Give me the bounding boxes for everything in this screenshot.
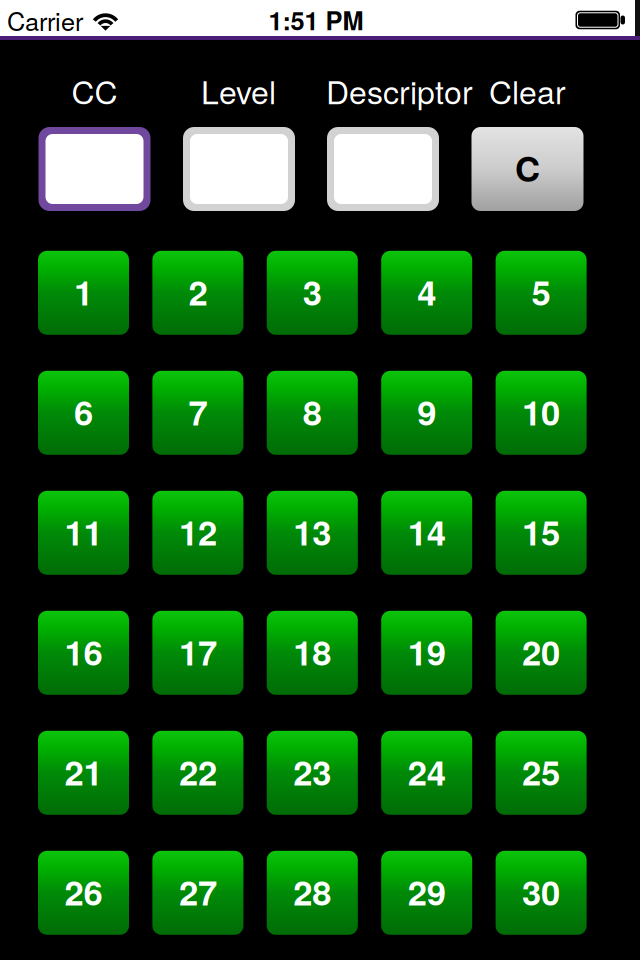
- button[interactable]: 2: [152, 251, 243, 335]
- staticText: 4: [417, 266, 436, 316]
- button[interactable]: 25: [496, 731, 587, 815]
- staticText: 13: [293, 506, 331, 556]
- staticText: 25: [522, 746, 560, 796]
- button[interactable]: 16: [38, 611, 129, 695]
- button[interactable]: 7: [152, 371, 243, 455]
- button[interactable]: 10: [496, 371, 587, 455]
- button[interactable]: CC: [38, 127, 150, 211]
- button[interactable]: 17: [152, 611, 243, 695]
- staticText: 12: [179, 506, 217, 556]
- staticText: 28: [293, 866, 331, 916]
- button[interactable]: 6: [38, 371, 129, 455]
- staticText: 7: [188, 386, 207, 436]
- button[interactable]: 26: [38, 851, 129, 935]
- button[interactable]: 4: [381, 251, 472, 335]
- button[interactable]: 20: [496, 611, 587, 695]
- button[interactable]: 18: [267, 611, 358, 695]
- staticText: 20: [522, 626, 560, 676]
- button[interactable]: Level: [183, 127, 295, 211]
- button[interactable]: 9: [381, 371, 472, 455]
- button[interactable]: 30: [496, 851, 587, 935]
- button[interactable]: 22: [152, 731, 243, 815]
- button[interactable]: 13: [267, 491, 358, 575]
- staticText: 18: [293, 626, 331, 676]
- staticText: 10: [522, 386, 560, 436]
- button[interactable]: C: [471, 127, 583, 211]
- staticText: 23: [293, 746, 331, 796]
- button[interactable]: 14: [381, 491, 472, 575]
- staticText: 11: [64, 506, 102, 556]
- staticText: 6: [74, 386, 93, 436]
- button[interactable]: 28: [267, 851, 358, 935]
- staticText: 26: [64, 866, 102, 916]
- staticText: Clear: [489, 68, 566, 113]
- staticText: 27: [179, 866, 217, 916]
- staticText: 17: [179, 626, 217, 676]
- staticText: CC: [71, 68, 117, 113]
- staticText: 24: [408, 746, 446, 796]
- button[interactable]: 8: [267, 371, 358, 455]
- staticText: 19: [408, 626, 446, 676]
- button[interactable]: 1: [38, 251, 129, 335]
- staticText: 16: [64, 626, 102, 676]
- button[interactable]: 24: [381, 731, 472, 815]
- button[interactable]: 19: [381, 611, 472, 695]
- staticText: Carrier: [7, 2, 83, 38]
- staticText: 1:51 PM: [268, 2, 363, 38]
- button[interactable]: 29: [381, 851, 472, 935]
- button[interactable]: 15: [496, 491, 587, 575]
- button[interactable]: 11: [38, 491, 129, 575]
- staticText: Level: [201, 68, 276, 113]
- button[interactable]: 12: [152, 491, 243, 575]
- staticText: 8: [303, 386, 322, 436]
- button[interactable]: 21: [38, 731, 129, 815]
- button[interactable]: 23: [267, 731, 358, 815]
- staticText: C: [515, 143, 540, 192]
- button[interactable]: 27: [152, 851, 243, 935]
- staticText: 22: [179, 746, 217, 796]
- button[interactable]: 3: [267, 251, 358, 335]
- staticText: 3: [303, 266, 322, 316]
- staticText: 1: [74, 266, 93, 316]
- staticText: 29: [408, 866, 446, 916]
- staticText: 9: [417, 386, 436, 436]
- staticText: 21: [64, 746, 102, 796]
- staticText: 14: [408, 506, 446, 556]
- staticText: 5: [532, 266, 551, 316]
- staticText: Descriptor: [326, 68, 473, 113]
- button[interactable]: 5: [496, 251, 587, 335]
- button[interactable]: Descriptor: [327, 127, 439, 211]
- staticText: 15: [522, 506, 560, 556]
- staticText: 30: [522, 866, 560, 916]
- staticText: 2: [188, 266, 207, 316]
